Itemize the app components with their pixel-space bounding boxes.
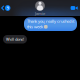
staticText: this week xyxy=(27,24,43,29)
staticText: Well done! xyxy=(6,37,24,42)
button[interactable]: FaceTime xyxy=(71,2,80,14)
button[interactable]: Jamie xyxy=(35,0,45,16)
staticText: Thank you, really crushed it xyxy=(27,19,74,24)
button[interactable]: Back xyxy=(0,2,10,14)
staticText: Jamie xyxy=(35,11,45,16)
staticText: 9 xyxy=(7,5,9,11)
